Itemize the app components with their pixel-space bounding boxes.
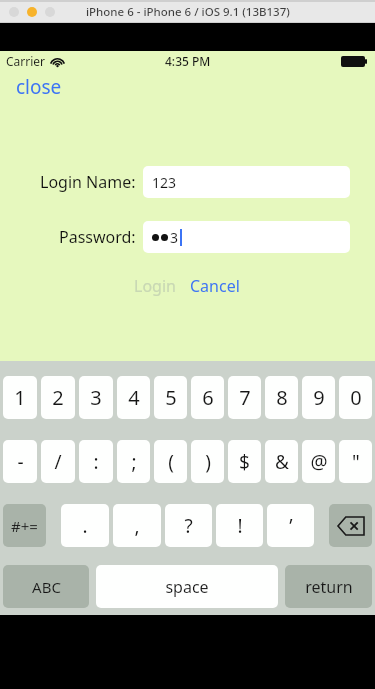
staticText: ? (184, 513, 193, 539)
staticText: ! (237, 513, 243, 539)
button[interactable]: , (113, 504, 161, 547)
button[interactable]: ! (216, 504, 263, 547)
button[interactable]: 3 (143, 221, 350, 253)
staticText: ( (168, 449, 174, 475)
staticText: ’ (289, 513, 293, 539)
staticText: : (93, 449, 99, 475)
button[interactable]: Backspace (329, 504, 372, 547)
staticText: 3 (90, 384, 102, 411)
button[interactable]: ( (154, 440, 187, 483)
staticText: 7 (239, 384, 251, 411)
staticText: 0 (350, 384, 362, 411)
staticText: " (352, 449, 360, 475)
button[interactable]: 5 (154, 376, 187, 419)
staticText: Carrier (6, 53, 46, 69)
staticText: Login (134, 275, 176, 297)
button[interactable]: 123 (143, 166, 350, 198)
button[interactable]: ? (165, 504, 212, 547)
staticText: $ (239, 449, 250, 475)
button[interactable]: 2 (41, 376, 75, 419)
staticText: space (165, 576, 209, 598)
button[interactable]: / (41, 440, 75, 483)
staticText: , (134, 513, 140, 539)
button[interactable]: 1 (3, 376, 37, 419)
button[interactable]: Cancel (187, 273, 243, 299)
button[interactable]: ) (191, 440, 224, 483)
staticText: ABC (32, 577, 61, 597)
button[interactable]: $ (228, 440, 261, 483)
staticText: 1 (14, 384, 26, 411)
staticText: 9 (313, 384, 325, 411)
staticText: 3 (170, 228, 179, 247)
staticText: @ (310, 449, 328, 475)
staticText: 123 (152, 173, 177, 192)
button[interactable]: 7 (228, 376, 261, 419)
button[interactable]: ABC (3, 565, 89, 608)
staticText: 8 (276, 384, 288, 411)
staticText: Password: (59, 226, 136, 248)
button[interactable]: ’ (267, 504, 314, 547)
staticText: iPhone 6 - iPhone 6 / iOS 9.1 (13B137) (86, 4, 290, 20)
staticText: 6 (202, 384, 214, 411)
button[interactable]: close (14, 73, 64, 101)
staticText: close (16, 74, 62, 100)
button[interactable]: 3 (79, 376, 113, 419)
staticText: ) (205, 449, 211, 475)
staticText: 4:35 PM (165, 53, 211, 69)
staticText: / (54, 449, 62, 475)
button[interactable]: #+= (3, 504, 46, 547)
button[interactable]: 9 (302, 376, 335, 419)
button[interactable]: : (79, 440, 113, 483)
staticText: 5 (165, 384, 177, 411)
button[interactable]: space (96, 565, 278, 608)
staticText: 2 (52, 384, 64, 411)
staticText: & (275, 449, 289, 475)
staticText: #+= (11, 516, 38, 536)
button[interactable]: return (285, 565, 372, 608)
button[interactable]: 4 (117, 376, 150, 419)
staticText: return (305, 576, 353, 598)
staticText: 4 (128, 384, 140, 411)
button[interactable]: 0 (339, 376, 372, 419)
button[interactable]: 6 (191, 376, 224, 419)
button[interactable]: 8 (265, 376, 298, 419)
staticText: . (82, 513, 88, 539)
button[interactable]: ; (117, 440, 150, 483)
button[interactable]: . (61, 504, 109, 547)
staticText: ; (131, 449, 137, 475)
staticText: Login Name: (40, 171, 136, 193)
button[interactable]: Login (131, 273, 179, 299)
button[interactable]: & (265, 440, 298, 483)
staticText: Cancel (190, 275, 240, 297)
staticText: - (17, 449, 24, 475)
button[interactable]: @ (302, 440, 335, 483)
button[interactable]: - (3, 440, 37, 483)
button[interactable]: " (339, 440, 372, 483)
